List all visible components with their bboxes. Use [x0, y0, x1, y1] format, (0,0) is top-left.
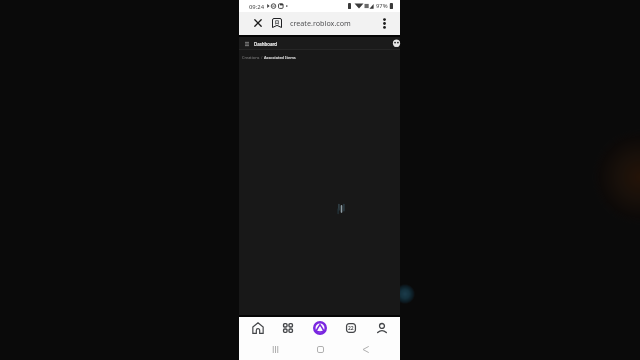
button[interactable]: Dashboard	[254, 41, 278, 47]
staticText: /	[260, 55, 264, 60]
button[interactable]: Recents	[264, 338, 286, 360]
staticText: create.roblox.com	[290, 18, 351, 28]
button[interactable]: Bookmark	[268, 14, 285, 31]
staticText: 22	[348, 325, 354, 332]
button[interactable]: Menu	[242, 39, 252, 49]
button[interactable]: Assistant	[307, 315, 333, 341]
staticText: 09:24	[249, 3, 265, 11]
staticText: 97%	[376, 2, 388, 10]
button[interactable]: Profile	[369, 315, 395, 341]
button[interactable]: Close	[249, 14, 266, 31]
button[interactable]: Home	[309, 338, 331, 360]
button[interactable]: Back	[354, 338, 376, 360]
button[interactable]: Apps	[275, 315, 301, 341]
button[interactable]: Account	[392, 39, 401, 48]
button[interactable]: Creations	[242, 55, 260, 60]
button[interactable]: Home	[245, 315, 271, 341]
staticText: Associated Items	[264, 55, 296, 60]
button[interactable]: Tabs	[338, 315, 364, 341]
button[interactable]: More options	[375, 14, 393, 32]
